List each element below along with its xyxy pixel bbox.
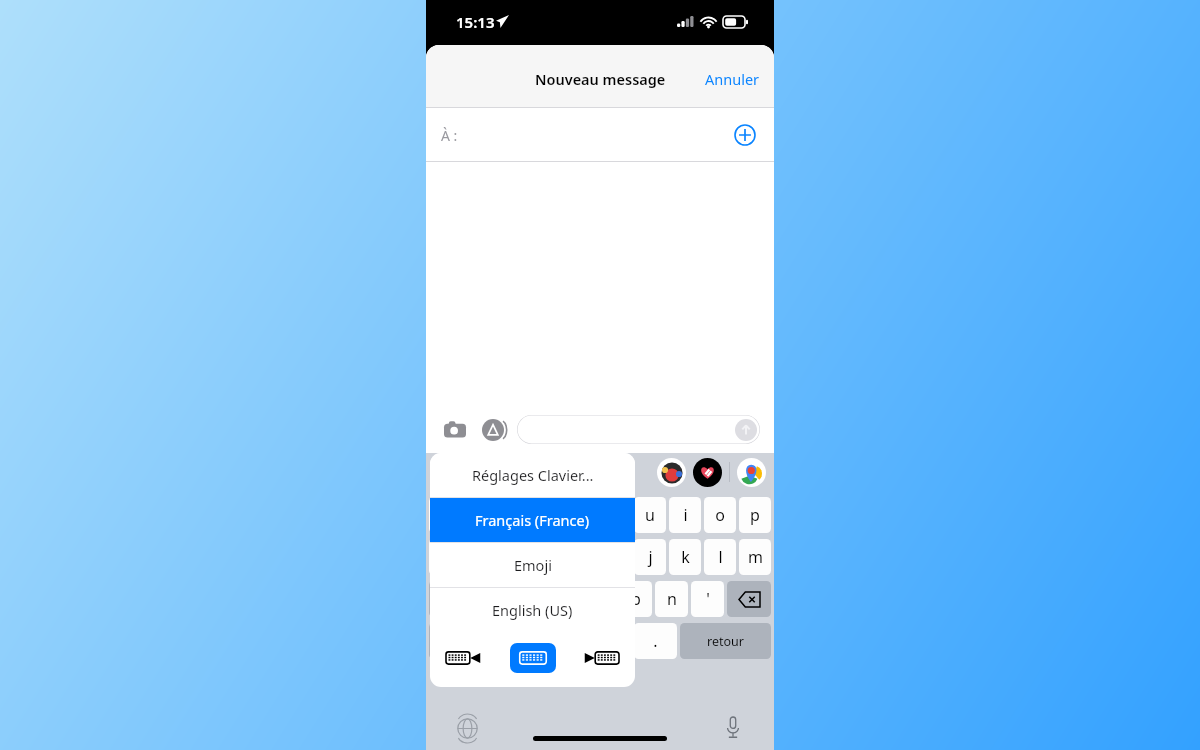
button[interactable]: t xyxy=(565,497,596,533)
button[interactable]: g xyxy=(565,539,596,575)
staticText: f xyxy=(544,546,550,568)
button[interactable]: Memoji xyxy=(657,458,686,487)
button[interactable]: espace xyxy=(484,623,631,659)
staticText: À : xyxy=(441,126,458,145)
button[interactable]: Clavier xyxy=(510,643,556,673)
button[interactable]: y xyxy=(599,497,631,533)
button[interactable]: Annuler xyxy=(691,61,774,97)
button[interactable]: Changer de clavier xyxy=(452,713,482,743)
button[interactable]: q xyxy=(429,539,460,575)
button[interactable]: o xyxy=(704,497,736,533)
button[interactable]: r xyxy=(531,497,562,533)
button[interactable]: z xyxy=(463,497,494,533)
button[interactable]: Majuscule xyxy=(429,581,472,617)
button[interactable]: p xyxy=(739,497,771,533)
staticText: Français (France) xyxy=(475,510,590,530)
button[interactable]: w xyxy=(475,581,508,617)
staticText: i xyxy=(683,504,688,526)
button[interactable]: d xyxy=(497,539,528,575)
button[interactable]: Clavier gauche xyxy=(440,643,486,673)
button[interactable]: App Store xyxy=(478,415,508,445)
button[interactable]: Envoyer xyxy=(517,415,760,444)
button[interactable]: i xyxy=(669,497,701,533)
button[interactable]: h xyxy=(599,539,631,575)
button[interactable]: a xyxy=(429,497,460,533)
staticText: r xyxy=(543,504,550,526)
staticText: retour xyxy=(707,633,744,650)
button[interactable]: Emoji xyxy=(430,543,635,587)
button[interactable]: Ajouter un contact xyxy=(730,120,760,150)
staticText: l xyxy=(718,546,723,568)
staticText: Réglages Clavier... xyxy=(472,465,594,485)
staticText: n xyxy=(667,588,677,610)
staticText: j xyxy=(648,546,653,568)
button[interactable]: Google Maps xyxy=(737,458,766,487)
staticText: m xyxy=(748,546,763,568)
button[interactable]: s xyxy=(463,539,494,575)
staticText: 15:13 xyxy=(456,12,495,32)
button[interactable]: e xyxy=(497,497,528,533)
button[interactable]: Supprimer xyxy=(727,581,771,617)
button[interactable]: x xyxy=(511,581,544,617)
staticText: x xyxy=(523,588,532,610)
button[interactable]: u xyxy=(634,497,666,533)
staticText: ' xyxy=(706,588,710,610)
button[interactable]: ' xyxy=(691,581,724,617)
button[interactable]: Réglages Clavier... xyxy=(430,453,635,497)
button[interactable]: Envoyer xyxy=(734,418,757,441)
button[interactable]: Digital Touch xyxy=(693,458,722,487)
button[interactable]: . xyxy=(634,623,677,659)
button[interactable]: c xyxy=(547,581,580,617)
button[interactable]: Clavier droite xyxy=(579,643,625,673)
staticText: c xyxy=(560,588,568,610)
button[interactable]: j xyxy=(634,539,666,575)
staticText: espace xyxy=(538,633,578,649)
staticText: Nouveau message xyxy=(535,69,666,89)
button[interactable]: l xyxy=(704,539,736,575)
staticText: English (US) xyxy=(492,600,573,620)
button[interactable]: m xyxy=(739,539,771,575)
button[interactable]: v xyxy=(583,581,616,617)
staticText: Emoji xyxy=(514,555,552,575)
staticText: p xyxy=(750,504,760,526)
button[interactable]: Français (France) xyxy=(430,498,635,542)
staticText: b xyxy=(631,588,641,610)
staticText: e xyxy=(508,504,518,526)
button[interactable]: n xyxy=(655,581,688,617)
button[interactable]: retour xyxy=(680,623,771,659)
staticText: o xyxy=(715,504,725,526)
staticText: u xyxy=(645,504,655,526)
staticText: k xyxy=(681,546,690,568)
button[interactable]: Dictée xyxy=(718,713,748,743)
button[interactable]: k xyxy=(669,539,701,575)
button[interactable]: f xyxy=(531,539,562,575)
staticText: . xyxy=(653,630,658,652)
staticText: t xyxy=(578,504,584,526)
staticText: z xyxy=(475,504,483,526)
staticText: d xyxy=(508,546,518,568)
staticText: w xyxy=(485,588,498,610)
button[interactable]: Appareil photo xyxy=(440,415,470,445)
button[interactable]: b xyxy=(619,581,652,617)
button[interactable]: English (US) xyxy=(430,588,635,632)
button[interactable]: 123 xyxy=(429,623,481,659)
staticText: Annuler xyxy=(705,69,760,89)
